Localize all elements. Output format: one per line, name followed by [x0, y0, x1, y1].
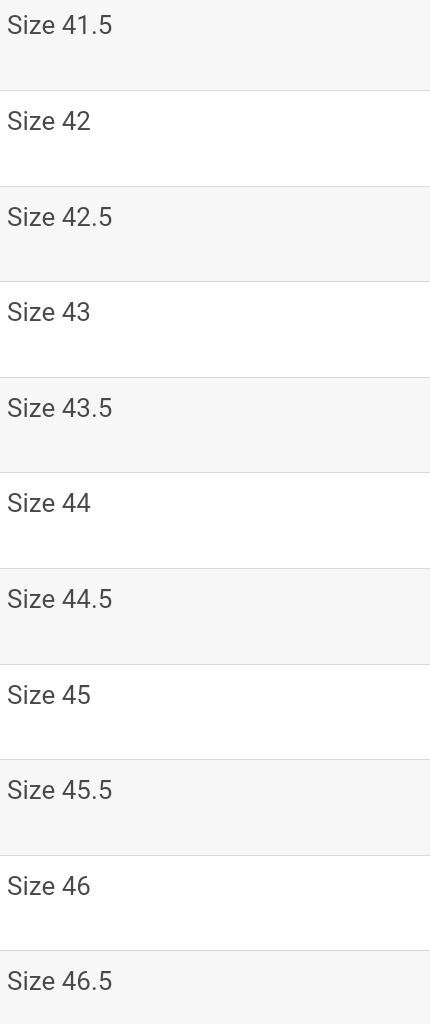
button[interactable]: Size 42.5: [0, 186, 430, 282]
button[interactable]: Size 44: [0, 472, 430, 568]
button[interactable]: Size 42: [0, 90, 430, 186]
button[interactable]: Size 45.5: [0, 759, 430, 855]
staticText: Size 41.5: [7, 10, 113, 40]
button[interactable]: Size 45: [0, 664, 430, 760]
staticText: Size 44.5: [7, 584, 113, 614]
staticText: Size 45: [7, 680, 91, 710]
button[interactable]: Size 41.5: [0, 0, 430, 90]
staticText: Size 46: [7, 871, 91, 901]
staticText: Size 46.5: [7, 966, 113, 996]
button[interactable]: Size 46: [0, 855, 430, 951]
staticText: Size 42: [7, 106, 91, 136]
staticText: Size 42.5: [7, 202, 113, 232]
staticText: Size 45.5: [7, 775, 113, 805]
staticText: Size 43.5: [7, 393, 113, 423]
button[interactable]: Size 43.5: [0, 377, 430, 473]
staticText: Size 44: [7, 488, 91, 518]
button[interactable]: Size 43: [0, 281, 430, 377]
staticText: Size 43: [7, 297, 91, 327]
button[interactable]: Size 44.5: [0, 568, 430, 664]
button[interactable]: Size 46.5: [0, 950, 430, 1024]
